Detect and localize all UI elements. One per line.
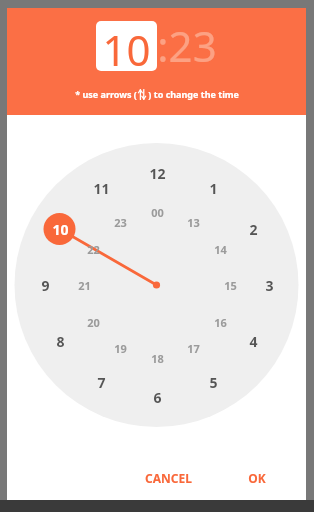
button[interactable]: 1 (200, 178, 226, 198)
staticText: 10 (102, 21, 151, 71)
button[interactable]: 17 (180, 339, 206, 357)
button[interactable]: 13 (180, 213, 206, 231)
staticText: ) to change the time (146, 88, 239, 100)
staticText: 15 (224, 278, 237, 293)
button[interactable]: 15 (217, 276, 243, 294)
button[interactable]: 14 (207, 240, 233, 258)
button[interactable]: 7 (88, 372, 114, 392)
staticText: 16 (214, 315, 227, 330)
staticText: 3 (265, 276, 274, 295)
staticText: 8 (56, 332, 65, 351)
button[interactable]: 19 (107, 339, 133, 357)
staticText: CANCEL (145, 470, 192, 486)
staticText: 23 (114, 215, 127, 230)
button[interactable]: 20 (80, 313, 106, 331)
staticText: 11 (93, 179, 110, 198)
staticText: 4 (249, 332, 258, 351)
staticText: 18 (151, 351, 164, 366)
button[interactable]: 10 (47, 219, 73, 239)
button[interactable]: 12 (144, 163, 170, 183)
staticText: OK (248, 470, 266, 486)
button[interactable]: 11 (88, 178, 114, 198)
staticText: 2 (249, 220, 258, 239)
button[interactable]: 5 (200, 372, 226, 392)
button[interactable]: 22 (80, 240, 106, 258)
staticText: 9 (41, 276, 50, 295)
button[interactable]: 6 (144, 387, 170, 407)
button[interactable]: 18 (144, 349, 170, 367)
other: Change time arrows (138, 89, 146, 100)
staticText: 14 (214, 242, 227, 257)
staticText: 10 (52, 220, 69, 239)
staticText: 22 (87, 242, 100, 257)
staticText: 13 (187, 215, 200, 230)
staticText: 6 (153, 388, 162, 407)
staticText: 20 (87, 315, 100, 330)
staticText: 1 (209, 179, 218, 198)
button[interactable]: 4 (240, 331, 266, 351)
button[interactable]: 00 (144, 203, 170, 221)
button[interactable]: 3 (256, 275, 282, 295)
button[interactable]: 23 (107, 213, 133, 231)
staticText: :23 (157, 17, 217, 74)
button[interactable]: CANCEL (135, 460, 202, 496)
button[interactable]: 10 (96, 21, 157, 71)
button[interactable]: 16 (207, 313, 233, 331)
staticText: 12 (149, 164, 166, 183)
staticText: 19 (114, 341, 127, 356)
button[interactable]: 8 (47, 331, 73, 351)
button[interactable]: 2 (240, 219, 266, 239)
button[interactable]: 9 (32, 275, 58, 295)
staticText: 5 (209, 373, 218, 392)
button[interactable]: OK (238, 460, 276, 496)
staticText: 7 (97, 373, 106, 392)
staticText: 00 (151, 205, 164, 220)
staticText: 17 (187, 341, 200, 356)
staticText: 21 (78, 278, 91, 293)
button[interactable]: 21 (71, 276, 97, 294)
staticText: * use arrows ( (74, 88, 138, 100)
